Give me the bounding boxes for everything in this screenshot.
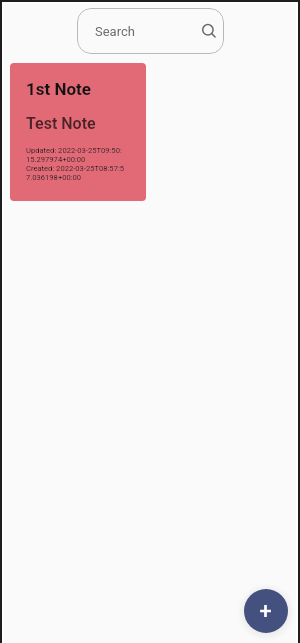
button[interactable]: Add note <box>244 589 288 633</box>
button[interactable]: 1st Note <box>10 63 146 201</box>
staticText: Search <box>95 24 135 39</box>
staticText: Created: 2022-03-25T08:57:57.036198+00:0… <box>26 164 124 182</box>
staticText: Updated: 2022-03-25T09:50:15.297974+00:0… <box>26 146 124 164</box>
staticText: Test Note <box>26 114 96 133</box>
button[interactable]: Search <box>77 8 224 54</box>
staticText: 1st Note <box>26 79 91 99</box>
